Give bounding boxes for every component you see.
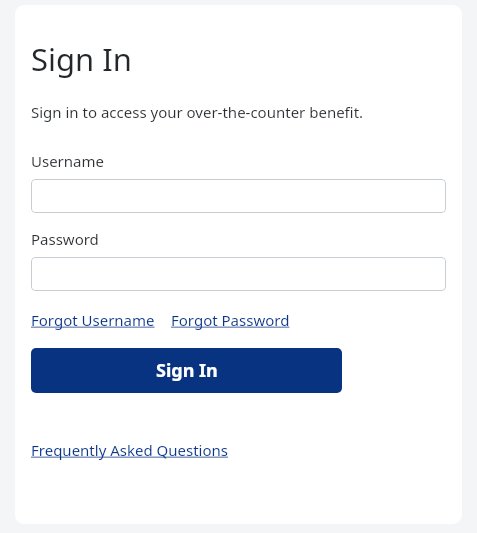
staticText: Sign in to access your over-the-counter … bbox=[31, 102, 364, 122]
staticText: Password bbox=[31, 229, 99, 249]
staticText: Forgot Password bbox=[171, 310, 290, 330]
button[interactable]: Forgot Password bbox=[171, 310, 290, 330]
button[interactable]: Sign In bbox=[31, 348, 342, 393]
staticText: Sign In bbox=[156, 358, 218, 383]
button[interactable]: Frequently Asked Questions bbox=[31, 440, 229, 460]
staticText: Username bbox=[31, 151, 104, 171]
button[interactable]: Password field bbox=[31, 257, 446, 291]
staticText: Sign In bbox=[31, 38, 132, 80]
button[interactable]: Username field bbox=[31, 179, 446, 213]
staticText: Forgot Username bbox=[31, 310, 155, 330]
button[interactable]: Forgot Username bbox=[31, 310, 155, 330]
staticText: Frequently Asked Questions bbox=[31, 440, 229, 460]
